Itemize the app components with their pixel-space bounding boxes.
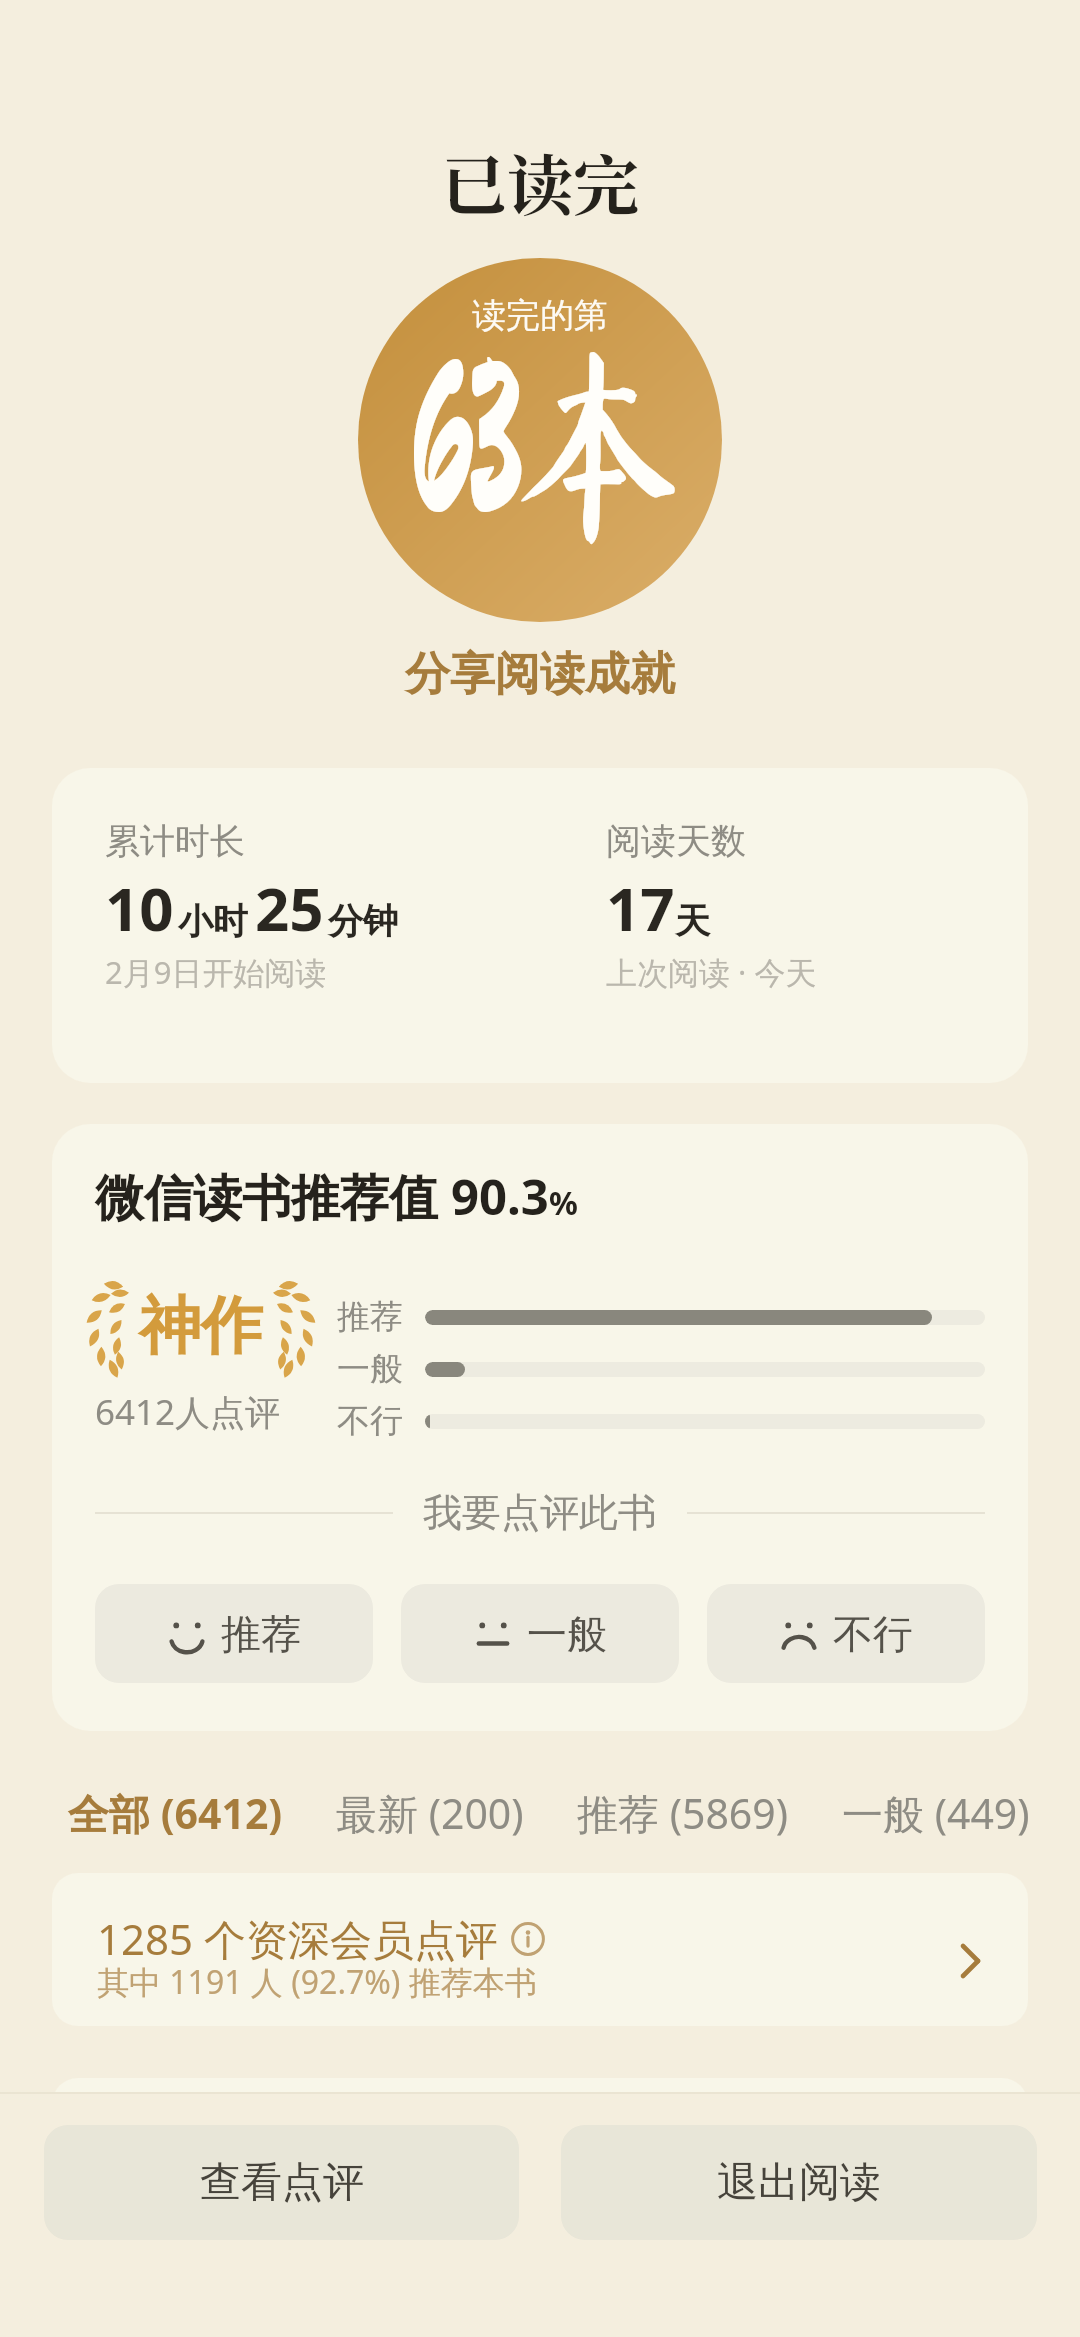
staticText: 上次阅读 · 今天 <box>606 951 817 993</box>
staticText: 分钟 <box>328 899 398 943</box>
staticText: 2月9日开始阅读 <box>105 951 327 993</box>
staticText: 小时 <box>178 899 248 943</box>
staticText: 退出阅读 <box>717 2157 881 2209</box>
staticText: 全部 (6412) <box>68 1785 283 1841</box>
button[interactable]: 推荐 (5869) <box>577 1779 789 1847</box>
button[interactable]: 1285 个资深会员点评 <box>52 1873 1028 2026</box>
button[interactable]: 一般 <box>401 1584 679 1683</box>
staticText: 推荐 <box>221 1609 301 1659</box>
staticText: 90.3 <box>451 1163 549 1230</box>
staticText: 已读完 <box>0 134 1080 229</box>
staticText: 神作 <box>139 1287 263 1365</box>
staticText: 推荐 (5869) <box>577 1785 789 1841</box>
staticText: 阅读天数 <box>606 819 746 863</box>
staticText: 读完的第 <box>472 294 608 337</box>
staticText: 10 <box>105 867 174 949</box>
button[interactable]: 退出阅读 <box>561 2125 1037 2240</box>
staticText: 25 <box>255 867 324 949</box>
staticText: 1285 个资深会员点评 <box>97 1910 499 1967</box>
staticText: 微信读书推荐值 <box>95 1163 451 1230</box>
button[interactable]: 全部 (6412) <box>68 1779 283 1847</box>
staticText: 17 <box>606 867 675 949</box>
staticText: 一般 (449) <box>842 1785 1030 1841</box>
button[interactable]: 一般 (449) <box>842 1779 1030 1847</box>
staticText: 6412人点评 <box>95 1388 281 1436</box>
staticText: 天 <box>675 899 710 943</box>
staticText: 累计时长 <box>105 819 245 863</box>
staticText: 一般 <box>527 1609 607 1659</box>
button[interactable]: 分享阅读成就 <box>0 640 1080 709</box>
staticText: 推荐 <box>337 1296 403 1338</box>
other: 查看资深会员点评 <box>948 1939 992 1983</box>
button[interactable]: 最新 (200) <box>336 1779 524 1847</box>
staticText: 一般 <box>337 1348 403 1390</box>
staticText: 不行 <box>337 1400 403 1442</box>
button[interactable]: 不行 <box>707 1584 985 1683</box>
staticText: 63本 <box>408 338 672 547</box>
button[interactable]: 读完的第63本 <box>358 258 722 622</box>
button[interactable]: 查看点评 <box>44 2125 519 2240</box>
button[interactable]: 推荐 <box>95 1584 373 1683</box>
staticText: 最新 (200) <box>336 1785 524 1841</box>
staticText: % <box>549 1181 578 1225</box>
staticText: 不行 <box>833 1609 913 1659</box>
staticText: 查看点评 <box>200 2157 364 2209</box>
staticText: 我要点评此书 <box>423 1488 657 1537</box>
staticText: 其中 1191 人 (92.7%) 推荐本书 <box>97 1960 537 2004</box>
